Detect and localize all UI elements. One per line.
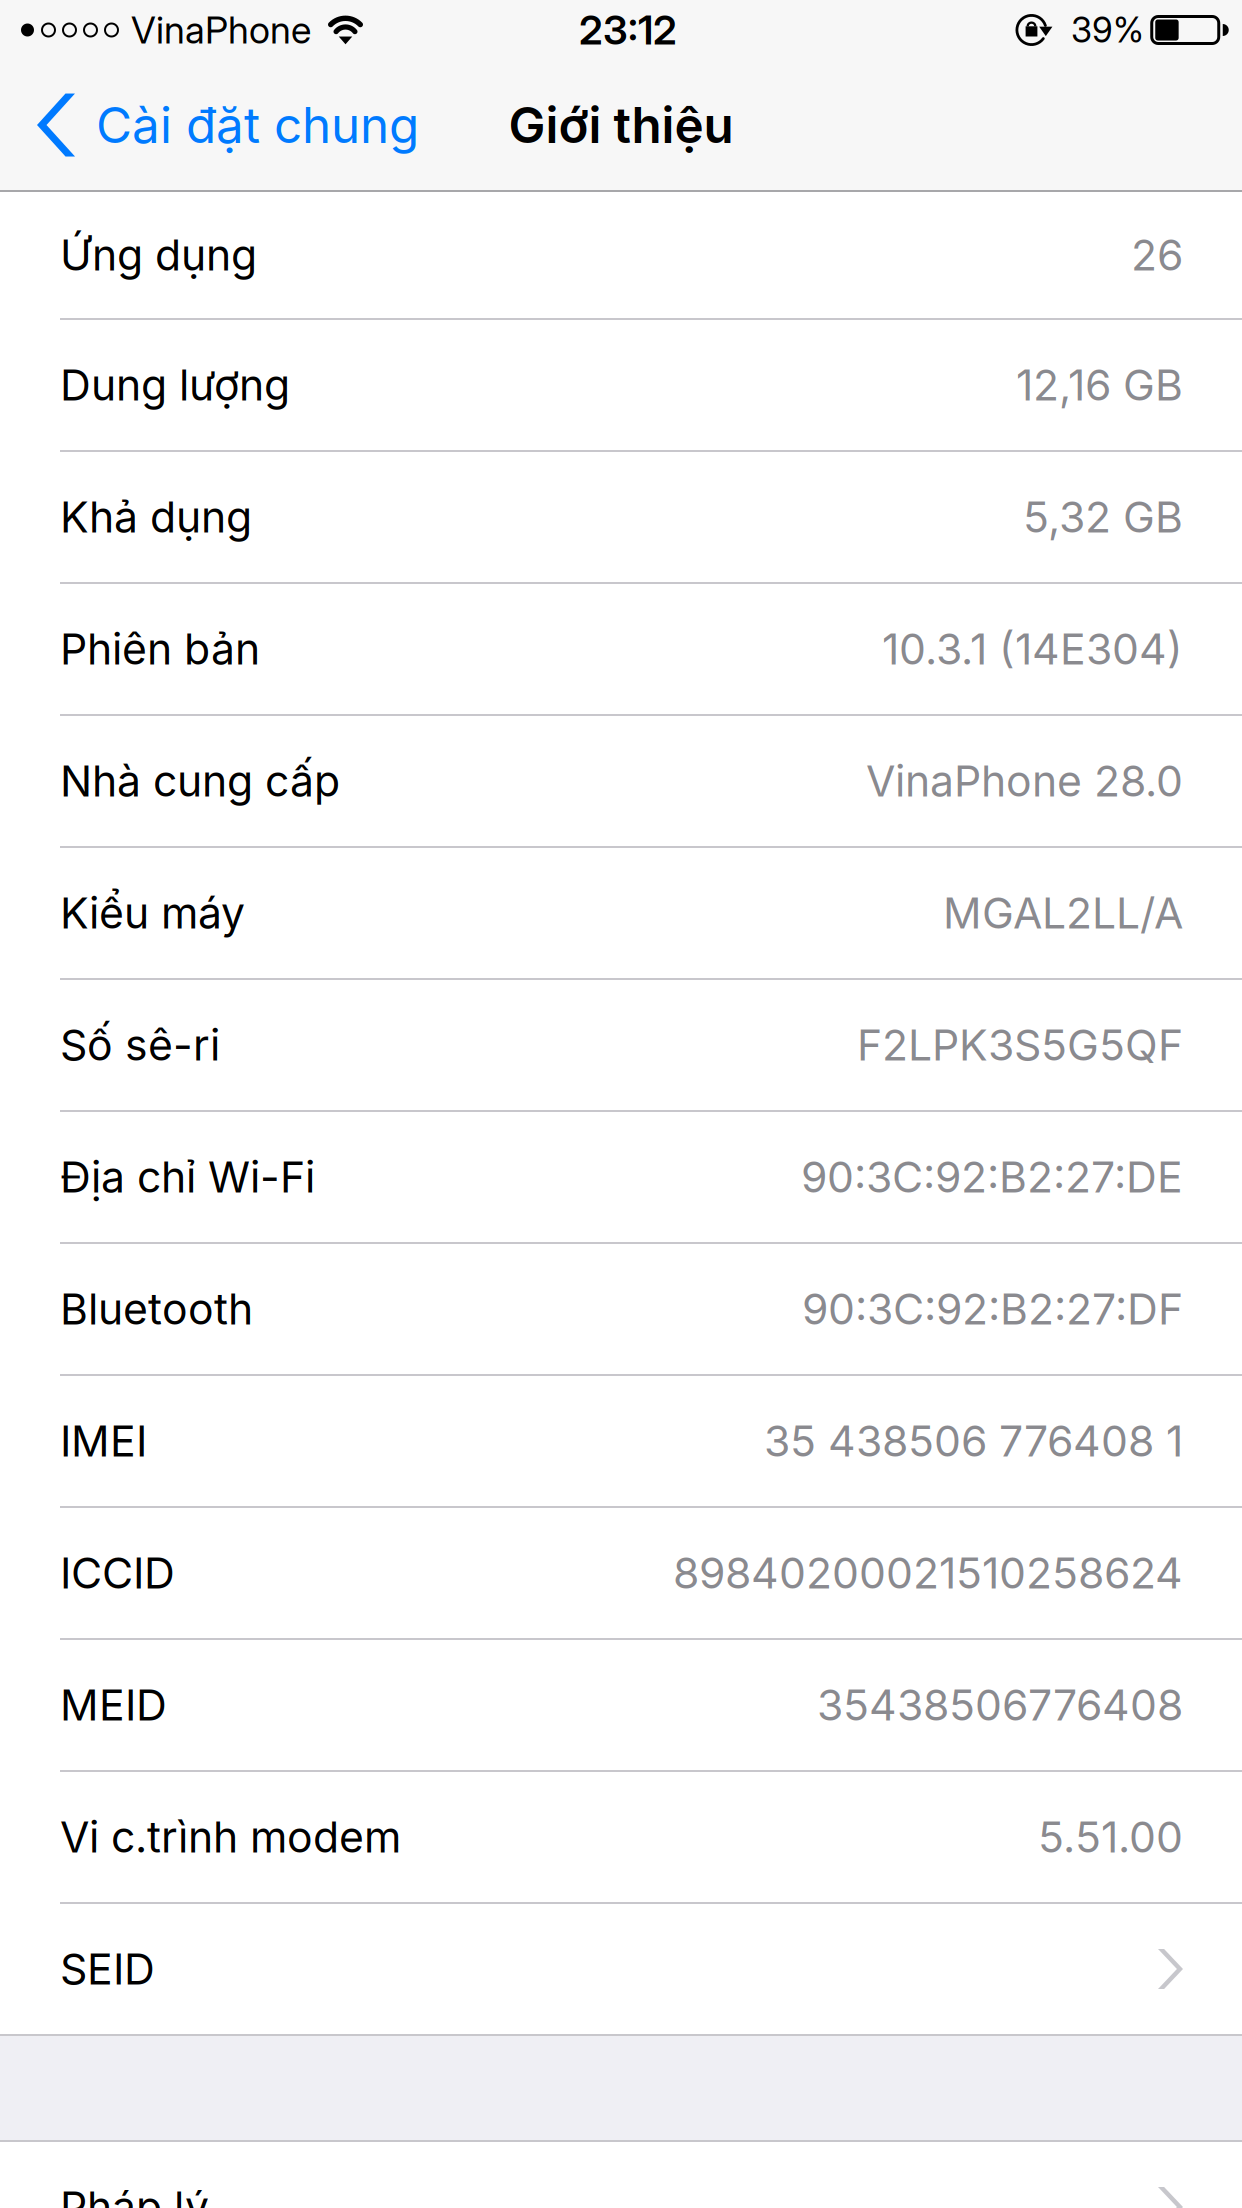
staticText: ICCID: [60, 1547, 175, 1599]
staticText: Nhà cung cấp: [60, 755, 340, 807]
staticText: 90:3C:92:B2:27:DE: [801, 1151, 1183, 1203]
staticText: 39%: [1071, 9, 1144, 51]
button[interactable]: Địa chỉ Wi-Fi: [0, 1112, 1242, 1242]
staticText: Kiểu máy: [60, 887, 245, 939]
staticText: Pháp lý: [60, 2181, 209, 2208]
button[interactable]: Ứng dụng: [0, 192, 1242, 318]
staticText: 90:3C:92:B2:27:DF: [802, 1283, 1183, 1335]
staticText: 12,16 GB: [1016, 359, 1183, 411]
button[interactable]: MEID: [0, 1640, 1242, 1770]
staticText: Vi c.trình modem: [60, 1811, 401, 1863]
button[interactable]: Số sê-ri: [0, 980, 1242, 1110]
button[interactable]: Khả dụng: [0, 452, 1242, 582]
staticText: SEID: [60, 1943, 155, 1995]
button[interactable]: Bluetooth: [0, 1244, 1242, 1374]
staticText: IMEI: [60, 1415, 147, 1467]
staticText: Bluetooth: [60, 1283, 253, 1335]
button[interactable]: Nhà cung cấp: [0, 716, 1242, 846]
staticText: Phiên bản: [60, 623, 260, 675]
button[interactable]: Phiên bản: [0, 584, 1242, 714]
button[interactable]: IMEI: [0, 1376, 1242, 1506]
staticText: VinaPhone: [131, 7, 311, 53]
staticText: 5.51.00: [1038, 1811, 1183, 1863]
staticText: 26: [1131, 229, 1183, 281]
staticText: Dung lượng: [60, 359, 290, 411]
button[interactable]: Kiểu máy: [0, 848, 1242, 978]
staticText: 5,32 GB: [1023, 491, 1183, 543]
staticText: Địa chỉ Wi-Fi: [60, 1151, 315, 1203]
staticText: 89840200021510258624: [673, 1547, 1183, 1599]
staticText: Số sê-ri: [60, 1019, 220, 1071]
button[interactable]: SEID: [0, 1904, 1242, 2034]
staticText: Giới thiệu: [508, 95, 733, 155]
staticText: 23:12: [579, 6, 677, 54]
staticText: 10.3.1 (14E304): [882, 623, 1183, 675]
button[interactable]: ICCID: [0, 1508, 1242, 1638]
staticText: 35 438506 776408 1: [764, 1415, 1183, 1467]
button[interactable]: Cài đặt chung: [0, 60, 443, 190]
staticText: MEID: [60, 1679, 167, 1731]
button[interactable]: Pháp lý: [0, 2142, 1242, 2208]
staticText: MGAL2LL/A: [943, 887, 1183, 939]
button[interactable]: Vi c.trình modem: [0, 1772, 1242, 1902]
staticText: F2LPK3S5G5QF: [857, 1019, 1183, 1071]
button[interactable]: Dung lượng: [0, 320, 1242, 450]
staticText: Khả dụng: [60, 491, 252, 543]
staticText: Ứng dụng: [60, 229, 257, 281]
staticText: VinaPhone 28.0: [866, 755, 1183, 807]
staticText: Cài đặt chung: [96, 95, 419, 155]
staticText: 35438506776408: [817, 1679, 1183, 1731]
